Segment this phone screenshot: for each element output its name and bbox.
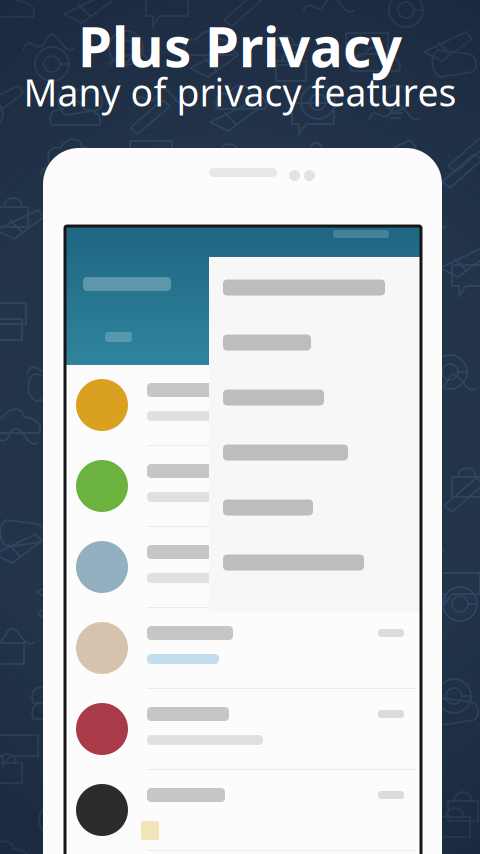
button[interactable] — [65, 689, 421, 770]
button[interactable] — [209, 315, 420, 370]
button[interactable] — [65, 527, 421, 608]
button[interactable] — [209, 260, 420, 315]
button[interactable] — [65, 770, 421, 851]
button[interactable] — [209, 480, 420, 535]
button[interactable] — [65, 365, 421, 446]
button[interactable] — [209, 370, 420, 425]
button[interactable] — [65, 608, 421, 689]
button[interactable] — [65, 446, 421, 527]
button[interactable] — [209, 535, 420, 590]
staticText: Many of privacy features — [23, 67, 456, 117]
staticText: Plus Privacy — [78, 10, 402, 82]
button[interactable] — [209, 425, 420, 480]
